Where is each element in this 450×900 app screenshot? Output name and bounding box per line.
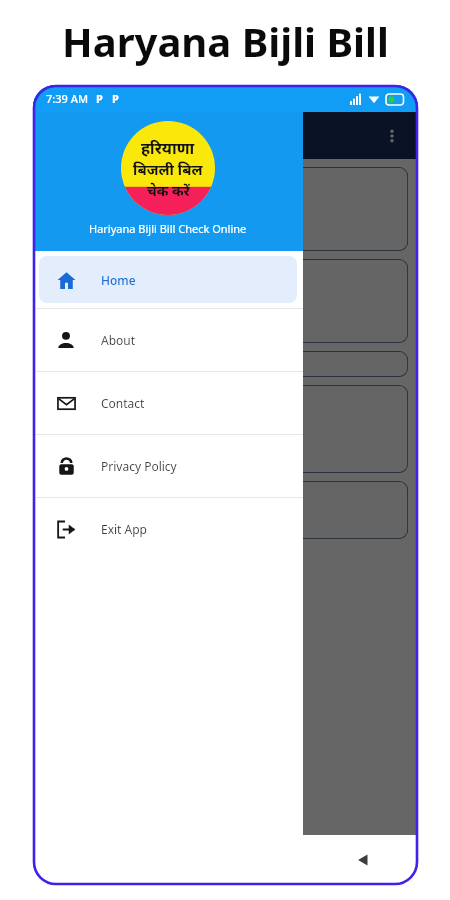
button[interactable]: शेयर बटन दबाकर इस एप: [43, 481, 408, 539]
button[interactable]: [43, 351, 408, 377]
staticText: Exit App: [101, 521, 147, 537]
staticText: 7:39 AM: [46, 91, 89, 106]
staticText: चेक करें: [147, 181, 190, 200]
staticText: Hariyana Bijli Bill Check Online: [89, 221, 247, 236]
button[interactable]: View Bill-DHBVN: [43, 167, 408, 251]
staticText: Haryana Bijli Bill: [62, 14, 389, 68]
staticText: Home: [101, 272, 136, 288]
staticText: Haryana Bijli Bill App: [85, 125, 241, 147]
button[interactable]: About: [33, 309, 303, 371]
staticText: बिजली बिल: [133, 159, 203, 179]
button[interactable]: Share App: [43, 385, 408, 473]
staticText: About: [101, 332, 136, 348]
button[interactable]: Bill Payment: [43, 259, 408, 343]
button[interactable]: Home: [39, 256, 297, 303]
staticText: P: [96, 91, 103, 106]
button[interactable]: Back: [346, 843, 380, 877]
staticText: हरियाणा: [141, 137, 195, 159]
staticText: शेयर बटन दबाकर इस एप: [166, 492, 286, 510]
button[interactable]: More options: [378, 122, 406, 150]
staticText: Bill Payment: [188, 301, 264, 319]
button[interactable]: Exit App: [33, 498, 303, 560]
button[interactable]: Privacy Policy: [33, 435, 303, 497]
staticText: Privacy Policy: [101, 458, 177, 474]
staticText: Contact: [101, 395, 145, 411]
button[interactable]: Contact: [33, 372, 303, 434]
staticText: P: [112, 91, 119, 106]
staticText: View Bill-DHBVN: [176, 220, 276, 238]
